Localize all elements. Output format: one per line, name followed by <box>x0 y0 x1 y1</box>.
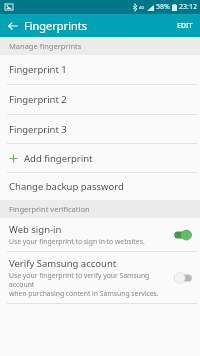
staticText: 4G <box>139 5 145 10</box>
button[interactable]: Fingerprint 1 <box>0 55 200 84</box>
button[interactable]: Add fingerprint <box>0 144 200 172</box>
staticText: Manage fingerprints <box>9 41 82 51</box>
staticText: Fingerprints <box>24 18 88 33</box>
button[interactable]: Back <box>5 18 21 34</box>
staticText: EDIT <box>177 21 193 31</box>
staticText: Web sign-in <box>9 223 62 236</box>
button[interactable]: Switch off <box>172 271 194 285</box>
staticText: 23:12 <box>179 2 197 12</box>
button[interactable]: EDIT <box>170 16 200 36</box>
button[interactable]: Switch on <box>172 228 194 242</box>
button[interactable]: Fingerprint 2 <box>0 85 200 114</box>
staticText: Fingerprint 3 <box>9 123 67 136</box>
staticText: Verify Samsung account <box>9 257 117 270</box>
staticText: Add fingerprint <box>24 152 93 165</box>
staticText: Change backup password <box>9 180 124 193</box>
button[interactable]: Web sign-in <box>0 218 200 251</box>
staticText: Use your fingerprint to sign in to websi… <box>9 237 145 246</box>
button[interactable]: Verify Samsung account <box>0 252 200 303</box>
button[interactable]: Change backup password <box>0 173 200 200</box>
staticText: Fingerprint verification <box>9 204 90 214</box>
staticText: Fingerprint 2 <box>9 93 67 106</box>
staticText: Fingerprint 1 <box>9 63 67 76</box>
staticText: Use your fingerprint to verify your Sams… <box>9 271 168 298</box>
staticText: 58% <box>156 2 170 12</box>
button[interactable]: Fingerprint 3 <box>0 115 200 143</box>
